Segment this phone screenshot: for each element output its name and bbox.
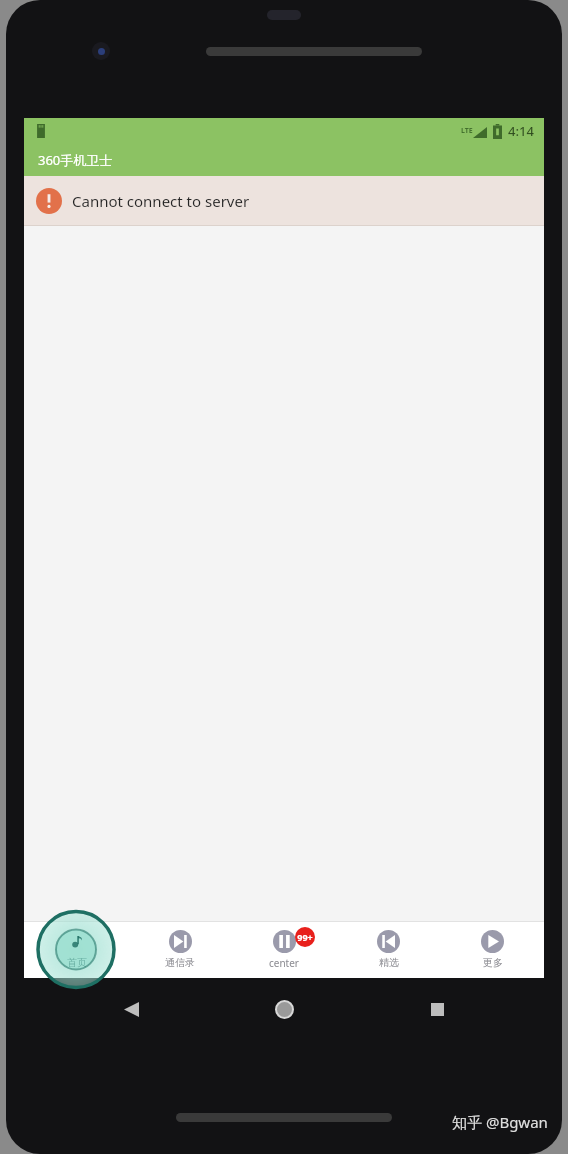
button[interactable]: Recents: [422, 994, 452, 1024]
staticText: 首页: [67, 956, 87, 969]
staticText: Cannot connect to server: [72, 191, 250, 211]
button[interactable]: 精选: [336, 921, 440, 978]
button[interactable]: 更多: [440, 921, 544, 978]
button[interactable]: Home: [269, 994, 299, 1024]
staticText: 99+: [297, 931, 313, 943]
staticText: 精选: [379, 956, 399, 969]
staticText: 4:14: [508, 122, 534, 140]
button[interactable]: 通信录: [128, 921, 232, 978]
staticText: 更多: [483, 956, 503, 969]
button[interactable]: 首页: [24, 921, 128, 978]
staticText: LTE: [461, 126, 473, 136]
button[interactable]: Back: [116, 994, 146, 1024]
button[interactable]: 99+: [232, 921, 336, 978]
staticText: center: [269, 956, 299, 970]
staticText: 通信录: [165, 956, 195, 969]
staticText: 知乎 @Bgwan: [452, 1112, 548, 1132]
button[interactable]: 首页: [24, 921, 128, 978]
staticText: 360手机卫士: [38, 151, 113, 169]
